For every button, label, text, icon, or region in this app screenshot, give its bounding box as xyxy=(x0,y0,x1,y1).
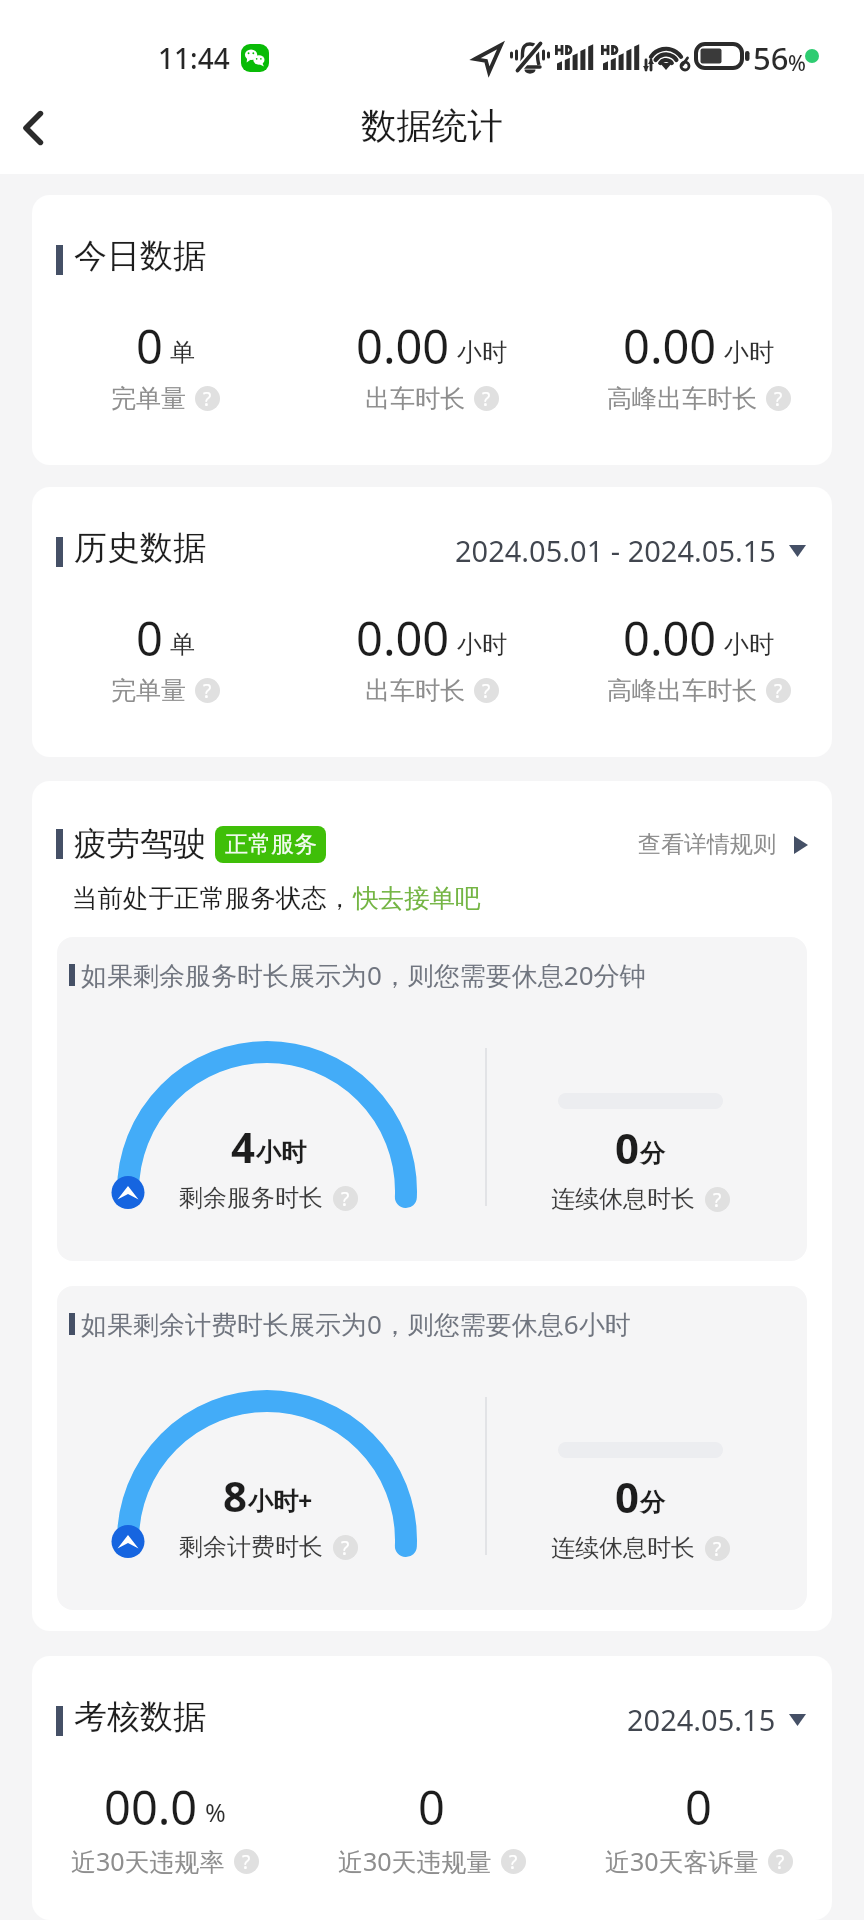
staticText: ? xyxy=(774,386,783,411)
staticText: 2024.05.15 xyxy=(627,1700,776,1739)
button[interactable]: Back xyxy=(8,102,60,154)
staticText: 小时+ xyxy=(248,1483,313,1517)
staticText: 连续休息时长 xyxy=(551,1184,695,1214)
staticText: 考核数据 xyxy=(74,1696,206,1738)
staticText: ? xyxy=(482,678,491,703)
staticText: 0 xyxy=(418,1775,445,1839)
button[interactable]: Help xyxy=(474,678,499,703)
staticText: 小时 xyxy=(457,337,507,368)
staticText: 剩余服务时长 xyxy=(179,1183,323,1213)
staticText: 完单量 xyxy=(111,675,186,706)
staticText: 高峰出车时长 xyxy=(607,675,757,706)
button[interactable]: Help xyxy=(195,386,220,411)
staticText: 0 xyxy=(685,1775,712,1839)
button[interactable]: Help xyxy=(333,1186,358,1211)
staticText: 近30天违规量 xyxy=(338,1844,492,1878)
staticText: 如果剩余服务时长展示为0，则您需要休息20分钟 xyxy=(81,957,646,993)
staticText: 出车时长 xyxy=(365,675,465,706)
staticText: 56 xyxy=(753,37,789,79)
staticText: 疲劳驾驶 xyxy=(74,823,206,865)
staticText: 完单量 xyxy=(111,383,186,414)
staticText: 0.00 xyxy=(356,314,450,378)
staticText: 剩余计费时长 xyxy=(179,1532,323,1562)
staticText: 0 xyxy=(136,314,163,378)
staticText: 0.00 xyxy=(356,606,450,670)
staticText: ? xyxy=(482,386,491,411)
button[interactable]: Help xyxy=(768,1849,793,1874)
staticText: 近30天违规率 xyxy=(71,1844,225,1878)
staticText: 8 xyxy=(223,1467,248,1524)
staticText: 查看详情规则 xyxy=(638,830,776,859)
staticText: 00.0 xyxy=(104,1775,198,1839)
button[interactable]: Help xyxy=(705,1536,730,1561)
staticText: 快去接单吧 xyxy=(353,882,481,914)
staticText: 当前处于正常服务状态， xyxy=(72,882,353,914)
button[interactable]: Help xyxy=(234,1849,259,1874)
staticText: 连续休息时长 xyxy=(551,1533,695,1563)
staticText: ? xyxy=(713,1187,722,1212)
button[interactable]: 查看详情规则 xyxy=(638,830,808,859)
staticText: % xyxy=(205,1795,226,1829)
staticText: % xyxy=(788,49,806,78)
staticText: 11:44 xyxy=(158,39,230,77)
staticText: 分 xyxy=(640,1487,665,1518)
button[interactable]: Help xyxy=(195,678,220,703)
staticText: 0 xyxy=(136,606,163,670)
staticText: ? xyxy=(203,678,212,703)
staticText: ? xyxy=(776,1849,785,1874)
staticText: ? xyxy=(242,1849,251,1874)
staticText: 单 xyxy=(170,629,195,660)
staticText: 0 xyxy=(615,1119,640,1176)
button[interactable]: Help xyxy=(766,386,791,411)
staticText: 小时 xyxy=(724,337,774,368)
staticText: 小时 xyxy=(724,629,774,660)
staticText: 数据统计 xyxy=(361,104,503,149)
button[interactable]: 正常服务 xyxy=(215,826,326,863)
button[interactable]: 2024.05.15 xyxy=(627,1700,806,1739)
staticText: 单 xyxy=(170,337,195,368)
staticText: ? xyxy=(713,1536,722,1561)
staticText: 今日数据 xyxy=(74,235,206,277)
button[interactable]: Help xyxy=(474,386,499,411)
staticText: 4 xyxy=(231,1118,256,1175)
staticText: 分 xyxy=(640,1138,665,1169)
button[interactable]: Help xyxy=(766,678,791,703)
staticText: 0 xyxy=(615,1468,640,1525)
button[interactable]: Help xyxy=(705,1187,730,1212)
staticText: 出车时长 xyxy=(365,383,465,414)
staticText: 小时 xyxy=(256,1137,306,1168)
staticText: 0.00 xyxy=(623,314,717,378)
staticText: ? xyxy=(203,386,212,411)
staticText: 正常服务 xyxy=(225,830,317,859)
staticText: 近30天客诉量 xyxy=(605,1844,759,1878)
staticText: 如果剩余计费时长展示为0，则您需要休息6小时 xyxy=(81,1306,631,1342)
button[interactable]: 2024.05.01 - 2024.05.15 xyxy=(455,531,806,570)
button[interactable]: Help xyxy=(333,1535,358,1560)
button[interactable]: Help xyxy=(501,1849,526,1874)
staticText: 历史数据 xyxy=(74,527,206,569)
staticText: 高峰出车时长 xyxy=(607,383,757,414)
staticText: ? xyxy=(341,1535,350,1560)
staticText: ? xyxy=(774,678,783,703)
staticText: ? xyxy=(509,1849,518,1874)
staticText: 小时 xyxy=(457,629,507,660)
staticText: 2024.05.01 - 2024.05.15 xyxy=(455,531,776,570)
staticText: 0.00 xyxy=(623,606,717,670)
staticText: ? xyxy=(341,1186,350,1211)
